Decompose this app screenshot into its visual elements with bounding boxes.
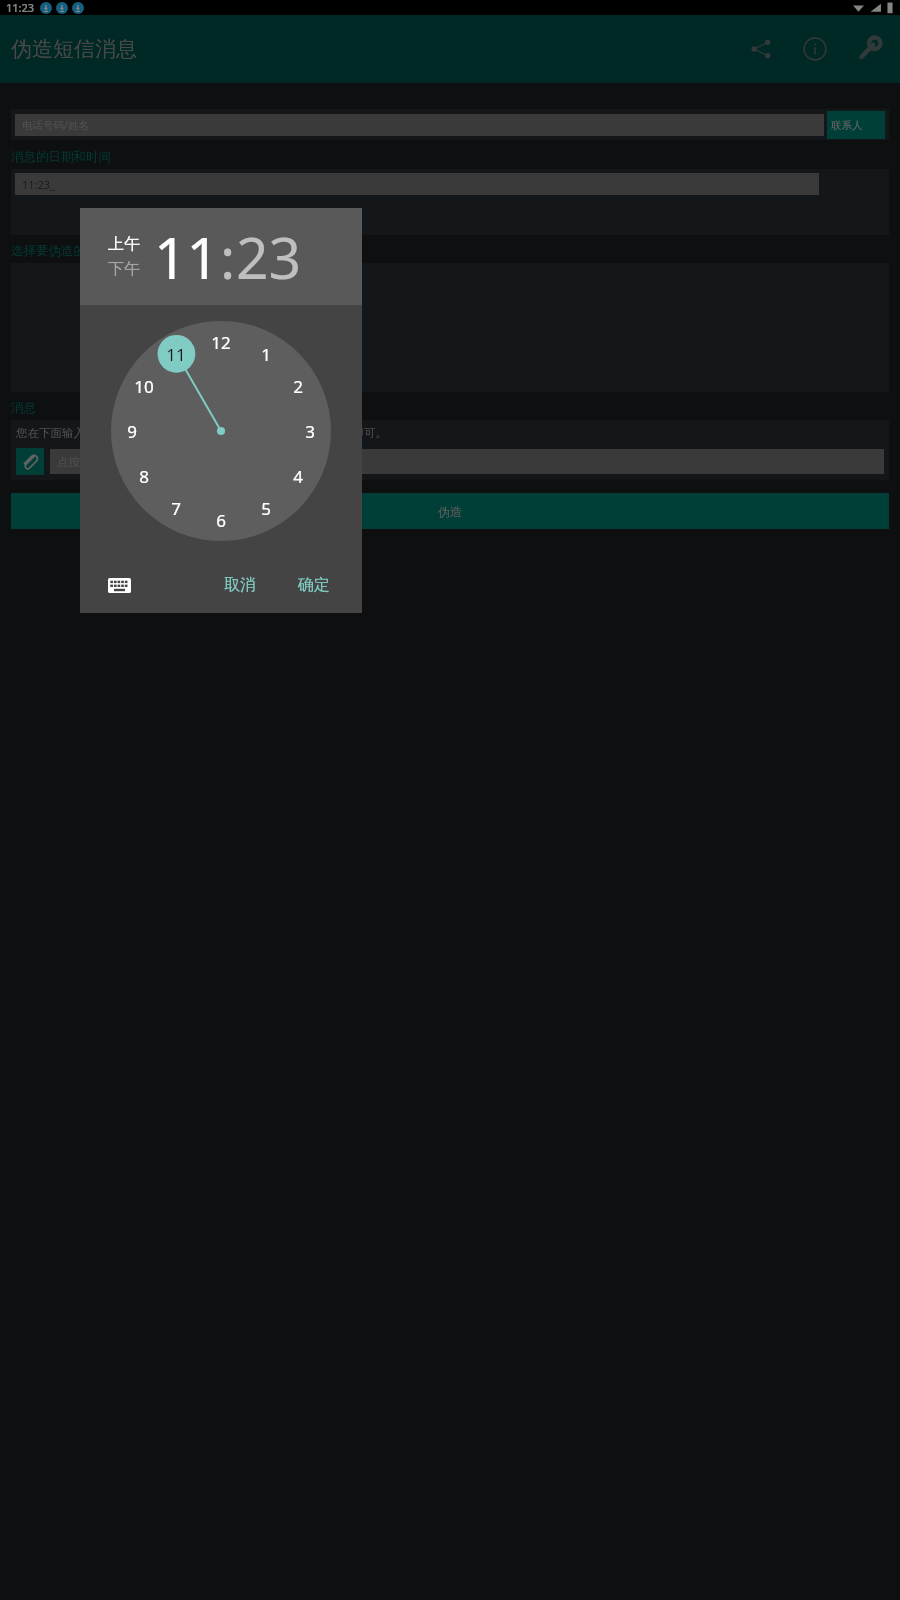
staticText: 12	[211, 331, 231, 354]
staticText: 5	[261, 497, 271, 520]
button[interactable]: 伪造	[11, 493, 889, 529]
button[interactable]: Share	[741, 29, 781, 69]
button[interactable]: 8	[127, 459, 161, 493]
staticText: 联系人	[831, 119, 863, 132]
button[interactable]: Switch to keyboard input	[102, 568, 136, 602]
button[interactable]: 11	[154, 218, 220, 296]
staticText: 取消	[224, 575, 256, 595]
button[interactable]: 4	[281, 459, 315, 493]
button[interactable]: 1	[249, 337, 283, 371]
staticText: 11:23_	[22, 177, 55, 192]
button[interactable]: 6	[204, 503, 238, 537]
button[interactable]: 下午	[108, 259, 140, 279]
staticText: 23	[236, 218, 302, 296]
staticText: 1	[261, 343, 271, 366]
staticText: 伪造	[438, 504, 462, 519]
button[interactable]: 2	[281, 369, 315, 403]
button[interactable]: 23	[236, 218, 302, 296]
button[interactable]: 9	[115, 414, 149, 448]
button[interactable]: 联系人	[827, 111, 885, 139]
staticText: 选择要伪造的	[11, 243, 86, 259]
button[interactable]: Settings	[849, 29, 889, 69]
staticText: 11	[154, 218, 220, 296]
button[interactable]: 5	[249, 491, 283, 525]
button[interactable]: 7	[159, 491, 193, 525]
button[interactable]: 11	[159, 337, 193, 371]
button[interactable]: Attach	[16, 448, 44, 475]
staticText: :	[220, 218, 236, 296]
staticText: 11:23	[6, 0, 35, 15]
staticText: 8	[139, 465, 149, 488]
staticText: 6	[216, 509, 226, 532]
staticText: 9	[127, 420, 137, 443]
staticText: 点按即可撰写信息	[57, 455, 149, 469]
button[interactable]: 取消	[214, 569, 266, 601]
staticText: 10	[134, 375, 154, 398]
button[interactable]: Info	[795, 29, 835, 69]
staticText: 7	[171, 497, 181, 520]
staticText: 下午	[108, 259, 140, 279]
staticText: 上午	[108, 234, 140, 254]
staticText: 您在下面输入的信息不会发送给任何人。 您只需立即通过手机接收即可。	[16, 425, 387, 441]
staticText: 消息	[11, 400, 36, 416]
button[interactable]: 上午	[108, 234, 140, 254]
button[interactable]: 点按即可撰写信息	[50, 449, 884, 474]
staticText: 4	[293, 465, 303, 488]
staticText: 确定	[298, 575, 330, 595]
staticText: 电话号码/姓名	[22, 118, 89, 132]
staticText: 消息的日期和时间	[11, 149, 111, 165]
button[interactable]: 确定	[288, 569, 340, 601]
button[interactable]: 3	[293, 414, 327, 448]
staticText: 伪造短信消息	[11, 36, 137, 62]
button[interactable]: 10	[127, 369, 161, 403]
button[interactable]: 12	[204, 325, 238, 359]
staticText: 11	[166, 343, 186, 366]
staticText: 3	[305, 420, 315, 443]
staticText: 2	[293, 375, 303, 398]
